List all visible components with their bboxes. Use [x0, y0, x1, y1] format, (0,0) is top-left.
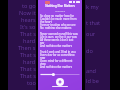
- staticText: And nothing else matters: [40, 44, 72, 47]
- staticText: Open mind for a different: [40, 59, 73, 62]
- staticText: Then s: [18, 44, 36, 51]
- staticText: Couldn't be much more from: [40, 17, 77, 20]
- staticText: hears: [21, 16, 36, 23]
- staticText: and: [86, 67, 97, 74]
- staticText: Life is ours, we live it our way: [40, 35, 77, 38]
- staticText: That s: [20, 30, 36, 37]
- staticText: That s: [20, 51, 36, 58]
- staticText: Forever trusting who we are: [40, 23, 76, 26]
- staticText: k my: [86, 3, 99, 10]
- staticText: So close no matter how far: [40, 14, 74, 17]
- staticText: ld be: [86, 77, 99, 84]
- staticText: That s: [20, 65, 36, 72]
- staticText: No, nothing else matters: [40, 26, 72, 29]
- staticText: Never opened myself this way: [40, 32, 78, 35]
- staticText: say: [40, 41, 45, 44]
- staticText: t that: [86, 19, 101, 26]
- staticText: Nothing Else Matters: [38, 4, 82, 8]
- staticText: our: [86, 30, 96, 37]
- staticText: That s: [20, 72, 36, 79]
- staticText: All these words I don't just: [40, 38, 74, 41]
- staticText: hard: [23, 58, 36, 65]
- staticText: do: [86, 47, 93, 54]
- staticText: Now it: [19, 9, 36, 16]
- staticText: It's so: [20, 23, 36, 30]
- staticText: Metallica: [38, 9, 82, 12]
- staticText: Every day for us something: [40, 53, 75, 56]
- staticText: And nothing else matters: [40, 65, 72, 68]
- staticText: hard: [23, 37, 36, 44]
- staticText: Trust I seek and I find in you: [40, 50, 76, 53]
- staticText: view: [40, 62, 46, 65]
- staticText: the heart: [40, 20, 52, 23]
- button[interactable]: Pause: [56, 78, 64, 86]
- staticText: new: [40, 56, 46, 59]
- staticText: to go: [22, 2, 36, 9]
- staticText: too: [27, 79, 36, 86]
